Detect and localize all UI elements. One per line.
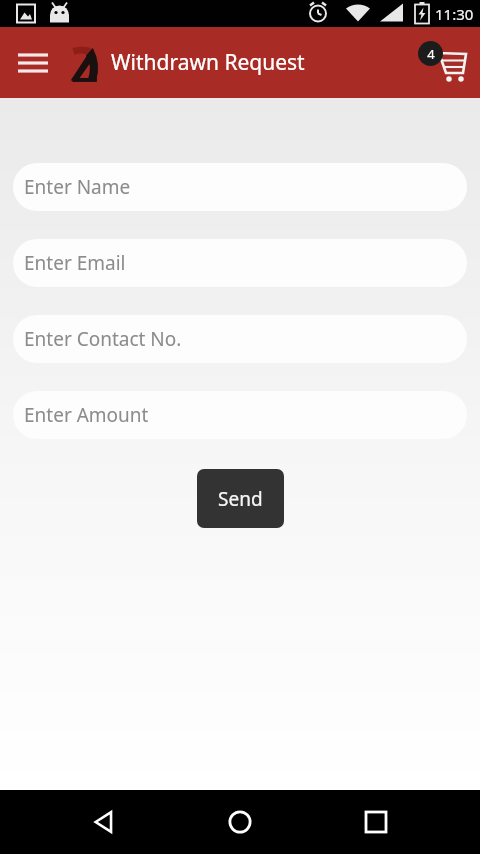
button[interactable]: Recent apps bbox=[344, 790, 408, 854]
staticText: 4 bbox=[427, 45, 435, 63]
staticText: Withdrawn Request bbox=[111, 48, 305, 77]
button[interactable]: Home bbox=[208, 790, 272, 854]
staticText: Send bbox=[218, 486, 263, 512]
button[interactable]: Open navigation menu bbox=[12, 42, 54, 84]
button[interactable]: Back bbox=[72, 790, 136, 854]
staticText: 11:30 bbox=[435, 4, 474, 24]
button[interactable]: Enter Contact No. bbox=[13, 315, 467, 363]
button[interactable]: Cart, 4 items bbox=[416, 35, 472, 91]
staticText: Enter Amount bbox=[24, 402, 149, 428]
button[interactable]: Enter Email bbox=[13, 239, 467, 287]
staticText: Enter Contact No. bbox=[24, 326, 182, 352]
staticText: Enter Name bbox=[24, 174, 131, 200]
button[interactable]: Enter Name bbox=[13, 163, 467, 211]
button[interactable]: Send bbox=[197, 469, 284, 528]
staticText: Enter Email bbox=[24, 250, 126, 276]
button[interactable]: Enter Amount bbox=[13, 391, 467, 439]
